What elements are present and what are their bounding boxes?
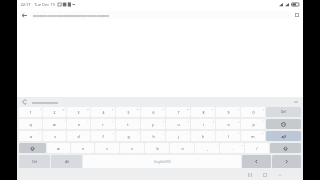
staticText: > [262, 131, 264, 134]
button[interactable]: Home [259, 169, 270, 180]
button[interactable]: , [195, 143, 219, 153]
button[interactable]: Alt [51, 155, 82, 168]
button[interactable]: b [145, 143, 169, 153]
button[interactable]: m [241, 131, 265, 141]
staticText: } [188, 119, 189, 122]
button[interactable]: 4 [91, 107, 115, 117]
button[interactable]: y [141, 119, 165, 129]
button[interactable]: 8 [191, 107, 215, 117]
button[interactable]: k [191, 131, 215, 141]
button[interactable]: Recents [244, 169, 255, 180]
staticText: e [78, 122, 80, 127]
staticText: ] [238, 119, 239, 122]
button[interactable]: emoji [266, 119, 301, 129]
button[interactable]: shift [19, 143, 46, 153]
staticText: k [202, 134, 204, 139]
staticText: w [53, 122, 56, 127]
staticText: r [102, 122, 104, 127]
button[interactable]: 7 [166, 107, 190, 117]
button[interactable]: o [216, 119, 240, 129]
button[interactable]: Back [274, 169, 285, 180]
button[interactable]: Left [242, 155, 271, 168]
button[interactable]: enter [266, 131, 301, 141]
staticText: ? [241, 143, 243, 146]
button[interactable]: 9 [216, 107, 240, 117]
button[interactable]: d [67, 131, 90, 141]
button[interactable]: 0 [241, 107, 265, 117]
staticText: d [77, 134, 80, 139]
button[interactable]: 5 [116, 107, 140, 117]
staticText: c [106, 146, 108, 151]
button[interactable]: Right [272, 155, 301, 168]
staticText: l [228, 134, 229, 139]
button[interactable]: j [166, 131, 190, 141]
staticText: ` [64, 119, 65, 122]
staticText: \ [138, 119, 139, 122]
staticText: b [156, 146, 159, 151]
staticText: ' [213, 131, 214, 134]
staticText: ) [263, 107, 264, 110]
staticText: English(US) [154, 160, 171, 164]
button[interactable]: w [43, 119, 66, 129]
staticText: q [29, 122, 32, 127]
staticText: 3 [77, 110, 80, 115]
staticText: j [178, 134, 179, 139]
button[interactable]: 3 [67, 107, 90, 117]
button[interactable]: a [19, 131, 42, 141]
staticText: / [113, 131, 114, 134]
staticText: Alt [65, 160, 69, 164]
staticText: ; [163, 131, 164, 134]
button[interactable]: h [141, 131, 165, 141]
staticText: : [138, 131, 139, 134]
button[interactable]: English(US) [83, 155, 241, 168]
staticText: 0 [252, 110, 255, 115]
button[interactable]: 1 [19, 107, 42, 117]
button[interactable]: n [170, 143, 194, 153]
staticText: w [57, 146, 60, 151]
button[interactable]: t [116, 119, 140, 129]
button[interactable]: s [43, 131, 66, 141]
button[interactable]: Voice input [21, 98, 28, 105]
button[interactable]: u [166, 119, 190, 129]
button[interactable]: w [47, 143, 70, 153]
button[interactable]: 2 [43, 107, 66, 117]
button[interactable]: / [245, 143, 269, 153]
button[interactable]: c [95, 143, 119, 153]
staticText: | [87, 119, 89, 122]
staticText: m [251, 134, 255, 139]
button[interactable]: x [71, 143, 94, 153]
button[interactable]: e [67, 119, 90, 129]
button[interactable]: Back [20, 11, 28, 19]
button[interactable]: i [191, 119, 215, 129]
button[interactable]: v [120, 143, 144, 153]
staticText: / [256, 146, 258, 151]
staticText: 4 [102, 110, 105, 115]
staticText: x [82, 146, 84, 151]
staticText: ! [40, 107, 41, 110]
staticText: y [152, 122, 154, 127]
staticText: * [212, 107, 214, 110]
staticText: @ [62, 107, 65, 110]
button[interactable]: Expand [292, 98, 299, 105]
button[interactable]: ooooooooooooooooooooooooooooooooooooo [30, 11, 291, 19]
button[interactable]: Tabs [293, 11, 300, 18]
staticText: + [39, 131, 41, 134]
button[interactable]: Ctrl [19, 155, 50, 168]
button[interactable]: f [91, 131, 115, 141]
button[interactable]: q [19, 119, 42, 129]
staticText: Ctrl [32, 160, 37, 164]
staticText: . [232, 146, 233, 151]
button[interactable]: l [216, 131, 240, 141]
button[interactable]: 6 [141, 107, 165, 117]
staticText: u [177, 122, 180, 127]
button[interactable]: p [241, 119, 265, 129]
button[interactable]: g [116, 131, 140, 141]
button[interactable]: Del [266, 107, 301, 117]
staticText: 6 [152, 110, 155, 115]
staticText: { [163, 119, 164, 122]
staticText: " [187, 131, 189, 134]
button[interactable]: r [91, 119, 115, 129]
staticText: 8 [202, 110, 205, 115]
button[interactable]: shift [270, 143, 301, 153]
